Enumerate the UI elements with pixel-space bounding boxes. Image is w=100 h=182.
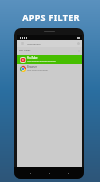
button[interactable]: YouTube bbox=[17, 55, 82, 64]
staticText: Applications bbox=[27, 42, 41, 45]
staticText: com.android.browser bbox=[27, 69, 49, 72]
button[interactable]: Search bbox=[77, 42, 80, 45]
button[interactable]: Browser bbox=[17, 64, 82, 73]
button[interactable]: Navigation button bbox=[46, 170, 52, 176]
staticText: com.google.android.youtube bbox=[27, 60, 56, 63]
staticText: Browser bbox=[27, 65, 38, 69]
button[interactable]: Navigation button bbox=[65, 170, 71, 176]
staticText: APPS FILTER bbox=[1, 11, 100, 23]
staticText: YouTube bbox=[27, 56, 38, 60]
button[interactable]: Navigation button bbox=[27, 170, 33, 176]
staticText: wifi Traffic bbox=[19, 48, 31, 51]
button[interactable]: wifi Traffic bbox=[17, 47, 82, 55]
